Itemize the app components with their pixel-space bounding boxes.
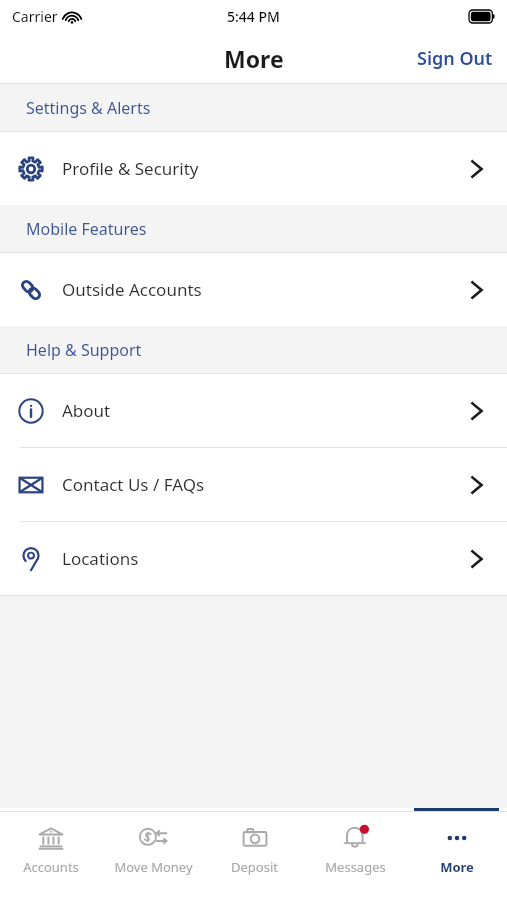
button[interactable]: More bbox=[406, 812, 507, 900]
staticText: Deposit bbox=[231, 858, 278, 876]
button[interactable]: About bbox=[0, 374, 507, 447]
button[interactable]: Outside Accounts bbox=[0, 253, 507, 326]
button[interactable]: Locations bbox=[0, 522, 507, 595]
button[interactable]: Accounts bbox=[0, 812, 102, 900]
staticText: Carrier bbox=[12, 7, 58, 26]
staticText: Locations bbox=[62, 547, 139, 570]
staticText: Move Money bbox=[114, 858, 193, 876]
staticText: Sign Out bbox=[417, 46, 493, 71]
staticText: Profile & Security bbox=[62, 157, 199, 180]
button[interactable]: Move Money bbox=[102, 812, 204, 900]
staticText: Help & Support bbox=[26, 339, 142, 361]
staticText: More bbox=[224, 43, 284, 74]
button[interactable]: Sign Out bbox=[403, 38, 507, 79]
button[interactable]: Profile & Security bbox=[0, 132, 507, 205]
button[interactable]: Contact Us / FAQs bbox=[0, 448, 507, 521]
button[interactable]: Messages bbox=[305, 812, 406, 900]
staticText: Contact Us / FAQs bbox=[62, 473, 205, 496]
staticText: More bbox=[440, 858, 474, 876]
staticText: Messages bbox=[325, 858, 386, 876]
staticText: About bbox=[62, 399, 111, 422]
staticText: 5:44 PM bbox=[227, 7, 280, 26]
staticText: Settings & Alerts bbox=[26, 97, 151, 119]
staticText: Accounts bbox=[23, 858, 79, 876]
staticText: Mobile Features bbox=[26, 218, 147, 240]
staticText: Outside Accounts bbox=[62, 278, 202, 301]
button[interactable]: Deposit bbox=[204, 812, 305, 900]
